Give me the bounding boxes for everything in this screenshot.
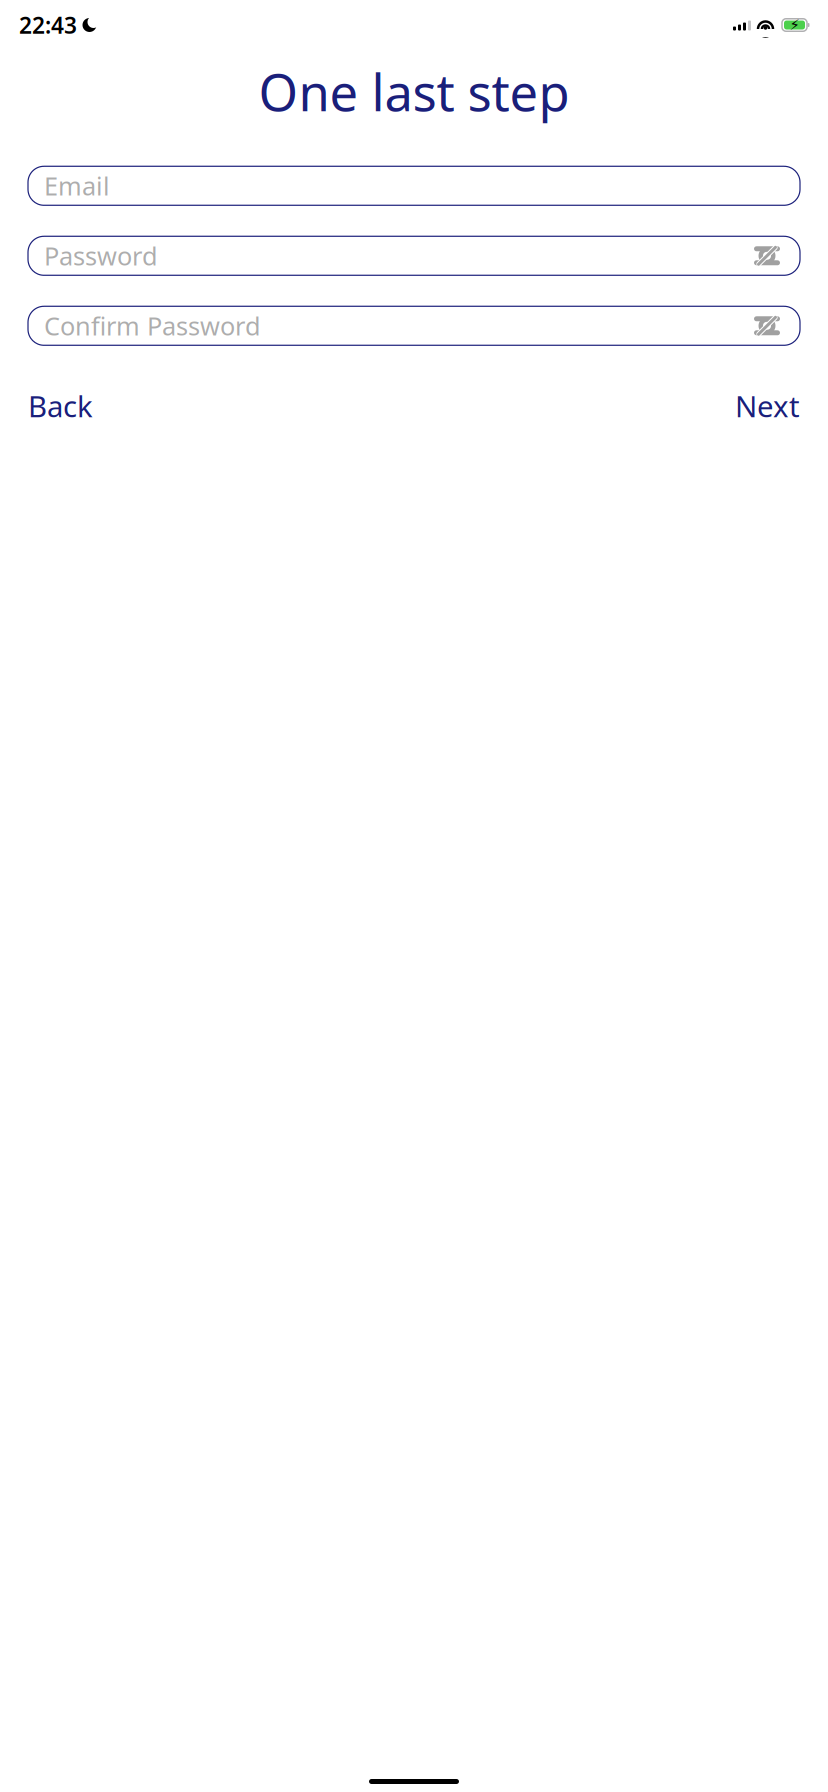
button[interactable]: Back	[28, 386, 93, 425]
button[interactable]: Show Confirm Password	[750, 309, 784, 343]
button[interactable]: Email	[28, 166, 800, 205]
staticText: Confirm Password	[44, 309, 261, 343]
staticText: One last step	[258, 58, 569, 125]
button[interactable]: Confirm Password	[28, 306, 800, 345]
button[interactable]: Next	[735, 386, 800, 425]
staticText: 22:43	[19, 10, 77, 40]
staticText: Back	[28, 386, 93, 425]
staticText: ⚡︎	[789, 17, 799, 33]
staticText: Next	[735, 386, 800, 425]
button[interactable]: Password	[28, 236, 800, 275]
staticText: Password	[44, 239, 158, 273]
staticText: Email	[44, 169, 110, 203]
button[interactable]: Show Password	[750, 239, 784, 273]
